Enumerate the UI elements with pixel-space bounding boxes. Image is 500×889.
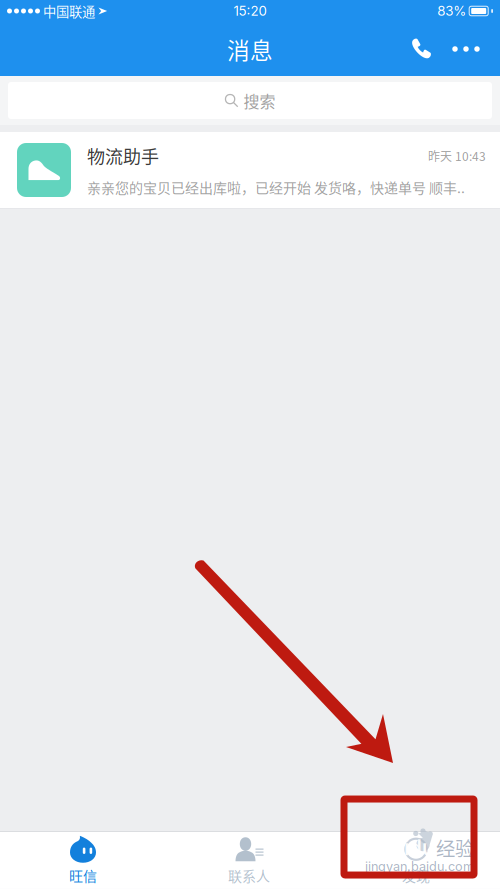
staticText: 物流助手 — [87, 143, 159, 169]
staticText: 发现 — [402, 865, 430, 886]
staticText: Baidu — [378, 835, 435, 860]
button[interactable]: 联系人 — [166, 832, 332, 888]
staticText: 联系人 — [228, 865, 270, 886]
staticText: 消息 — [227, 33, 273, 65]
staticText: 旺信 — [69, 865, 97, 886]
button[interactable]: 发现 — [332, 832, 500, 888]
staticText: 中国联通 — [40, 1, 98, 21]
staticText: 15:20 — [233, 3, 266, 19]
button[interactable]: 搜索 — [8, 82, 492, 119]
button[interactable]: More — [443, 27, 489, 71]
staticText: 搜索 — [243, 89, 275, 112]
button[interactable]: 物流助手 — [0, 132, 500, 208]
button[interactable]: Call — [399, 27, 443, 71]
button[interactable]: 旺信 — [0, 832, 166, 888]
staticText: 经验 — [436, 834, 474, 862]
staticText: jingyan.baidu.com — [365, 859, 474, 874]
staticText: 亲亲您的宝贝已经出库啦，已经开始 发货咯，快递单号 顺丰.. — [87, 177, 465, 197]
staticText: 83% — [437, 3, 466, 19]
staticText: 昨天 10:43 — [428, 147, 486, 165]
